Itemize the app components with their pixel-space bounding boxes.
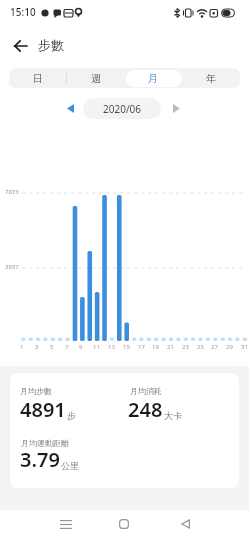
button[interactable]: 週 — [72, 68, 120, 88]
staticText: 週 — [91, 72, 101, 85]
staticText: 3937 — [5, 263, 19, 271]
button[interactable] — [110, 512, 138, 536]
staticText: 23 — [182, 343, 189, 351]
staticText: 7 — [65, 343, 69, 351]
staticText: 月 — [148, 72, 158, 85]
staticText: 7873 — [5, 188, 19, 196]
staticText: 步 — [67, 410, 76, 421]
staticText: 17 — [138, 343, 145, 351]
staticText: 年 — [206, 72, 216, 85]
staticText: 21 — [167, 343, 174, 351]
staticText: 9 — [79, 343, 83, 351]
button[interactable]: 月 — [129, 68, 177, 88]
button[interactable] — [5, 35, 37, 57]
staticText: 步數 — [38, 37, 64, 53]
button[interactable] — [52, 512, 80, 536]
staticText: 月均步數 — [20, 386, 52, 396]
staticText: 13 — [108, 343, 115, 351]
button[interactable] — [166, 98, 186, 119]
staticText: 3.79 — [20, 446, 60, 473]
staticText: 公里 — [61, 460, 79, 471]
button[interactable] — [60, 98, 80, 119]
staticText: 日 — [33, 72, 43, 85]
staticText: 大卡 — [164, 410, 182, 421]
staticText: 2020/06 — [103, 102, 142, 116]
staticText: 4891 — [20, 396, 66, 423]
button[interactable] — [171, 512, 199, 536]
button[interactable]: 年 — [187, 68, 235, 88]
button[interactable]: 2020/06 — [83, 98, 161, 119]
staticText: 31 — [241, 343, 248, 351]
button[interactable]: 日 — [14, 68, 62, 88]
staticText: 3 — [35, 343, 39, 351]
staticText: 15:10 — [10, 5, 36, 19]
button[interactable] — [10, 373, 239, 488]
staticText: 19 — [152, 343, 159, 351]
staticText: 25 — [197, 343, 204, 351]
staticText: 月均消耗 — [130, 386, 162, 396]
staticText: 15 — [123, 343, 130, 351]
staticText: 29 — [226, 343, 233, 351]
staticText: 11 — [93, 343, 100, 351]
staticText: 248 — [128, 396, 163, 423]
staticText: 1 — [20, 343, 24, 351]
staticText: 27 — [211, 343, 218, 351]
staticText: 5 — [50, 343, 54, 351]
staticText: 月均運動距離 — [21, 438, 69, 448]
